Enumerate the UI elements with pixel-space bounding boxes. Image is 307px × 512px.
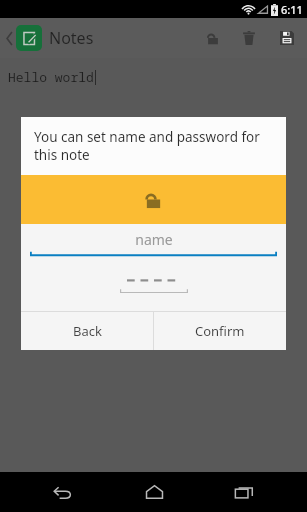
button[interactable]: Confirm bbox=[154, 312, 286, 350]
button[interactable]: Delete bbox=[231, 18, 267, 58]
staticText: name bbox=[135, 230, 173, 249]
button[interactable]: Home bbox=[127, 472, 181, 512]
button[interactable]: Lock bbox=[195, 18, 231, 58]
staticText: Notes bbox=[49, 27, 94, 49]
button[interactable]: name bbox=[21, 224, 286, 264]
button[interactable]: Recent apps bbox=[217, 472, 271, 512]
staticText: Back bbox=[73, 322, 102, 340]
staticText: 6:11 bbox=[281, 2, 303, 17]
staticText: You can set name and password for this n… bbox=[34, 128, 273, 164]
button[interactable]: Save bbox=[267, 18, 307, 58]
button[interactable]: Back bbox=[21, 312, 153, 350]
button[interactable] bbox=[21, 264, 286, 307]
button[interactable]: Navigate up bbox=[3, 24, 16, 52]
button[interactable]: Back bbox=[36, 472, 90, 512]
button[interactable]: Toggle lock bbox=[21, 175, 286, 224]
staticText: Hello world bbox=[8, 68, 94, 86]
staticText: Confirm bbox=[195, 322, 245, 340]
